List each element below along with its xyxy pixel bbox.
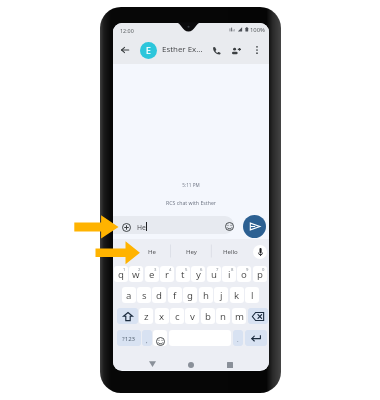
staticText: z [144, 310, 149, 323]
button[interactable]: v [185, 308, 199, 324]
button[interactable]: Hello [212, 239, 248, 263]
button[interactable]: c [170, 308, 184, 324]
button[interactable]: m [232, 308, 246, 324]
staticText: s [142, 289, 147, 302]
staticText: h [203, 289, 209, 302]
staticText: c [175, 310, 180, 323]
button[interactable]: Shift [117, 308, 138, 324]
button[interactable]: o [237, 266, 251, 282]
staticText: e [149, 268, 155, 281]
button[interactable]: Recent apps [223, 358, 237, 371]
staticText: Hello [223, 247, 238, 255]
button[interactable]: w [129, 266, 143, 282]
staticText: 8 [231, 267, 234, 273]
staticText: 9 [246, 267, 249, 273]
button[interactable]: j [214, 287, 228, 303]
staticText: 4 [169, 267, 172, 273]
button[interactable]: h [199, 287, 213, 303]
button[interactable]: Period [233, 330, 243, 346]
button[interactable]: Send [243, 215, 266, 238]
button[interactable]: Add people [229, 44, 243, 58]
button[interactable]: r [160, 266, 174, 282]
staticText: 1 [123, 267, 126, 273]
staticText: l [251, 289, 254, 302]
button[interactable]: t [176, 266, 190, 282]
staticText: y [196, 268, 201, 281]
button[interactable]: z [139, 308, 153, 324]
button[interactable] [113, 216, 234, 234]
button[interactable]: Symbols [117, 330, 141, 346]
staticText: k [234, 289, 240, 302]
staticText: He [137, 223, 146, 232]
staticText: 7 [216, 267, 219, 273]
button[interactable]: s [137, 287, 151, 303]
button[interactable]: y [191, 266, 205, 282]
staticText: d [156, 289, 162, 302]
button[interactable]: Back [118, 43, 132, 57]
staticText: a [126, 289, 132, 302]
button[interactable]: Contact avatar [140, 42, 157, 59]
button[interactable]: Voice input [253, 245, 267, 259]
staticText: E [146, 45, 151, 57]
staticText: o [241, 268, 247, 281]
button[interactable]: n [216, 308, 230, 324]
staticText: m [235, 310, 244, 323]
staticText: Esther Ex... [162, 44, 203, 55]
staticText: . [237, 336, 239, 344]
button[interactable]: Hey [173, 239, 209, 263]
button[interactable] [153, 330, 167, 346]
button[interactable]: a [122, 287, 136, 303]
button[interactable]: u [207, 266, 221, 282]
button[interactable]: Backspace [248, 308, 268, 324]
staticText: ?123 [122, 334, 136, 342]
button[interactable]: Comma [142, 330, 152, 346]
button[interactable]: Call [209, 43, 223, 57]
staticText: p [257, 268, 263, 281]
button[interactable]: f [168, 287, 182, 303]
button[interactable]: x [155, 308, 169, 324]
staticText: u [211, 268, 217, 281]
button[interactable]: Back [145, 357, 159, 371]
staticText: v [190, 310, 195, 323]
button[interactable]: d [152, 287, 166, 303]
button[interactable]: Emoji [223, 220, 235, 232]
button[interactable]: Emoji keyboard [155, 336, 165, 346]
staticText: q [118, 268, 124, 281]
staticText: 5 [185, 267, 188, 273]
staticText: 6 [200, 267, 203, 273]
staticText: g [187, 289, 193, 302]
button[interactable]: He [134, 239, 170, 263]
staticText: j [220, 289, 223, 302]
staticText: t [181, 268, 185, 281]
staticText: 0 [262, 267, 265, 273]
staticText: w [132, 268, 140, 281]
button[interactable]: i [222, 266, 236, 282]
staticText: Hey [186, 247, 197, 255]
staticText: RCS chat with Esther [113, 199, 269, 206]
staticText: , [146, 337, 148, 345]
button[interactable]: g [183, 287, 197, 303]
staticText: 5:11 PM [113, 182, 269, 188]
button[interactable]: b [201, 308, 215, 324]
button[interactable]: q [114, 266, 128, 282]
staticText: He [148, 247, 156, 255]
staticText: 2 [138, 267, 141, 273]
staticText: i [228, 268, 231, 281]
staticText: n [220, 310, 226, 323]
button[interactable]: l [245, 287, 259, 303]
staticText: 12:00 [120, 27, 134, 34]
staticText: r [165, 268, 169, 281]
button[interactable]: k [230, 287, 244, 303]
staticText: 100% [250, 26, 266, 34]
button[interactable]: e [145, 266, 159, 282]
button[interactable]: p [253, 266, 267, 282]
staticText: x [159, 310, 165, 323]
staticText: b [205, 310, 211, 323]
button[interactable]: Home [184, 358, 198, 371]
button[interactable]: Add attachment [120, 221, 132, 233]
button[interactable]: Enter [245, 330, 267, 346]
staticText: f [173, 289, 177, 302]
button[interactable]: More options [250, 43, 264, 57]
staticText: 3 [154, 267, 157, 273]
